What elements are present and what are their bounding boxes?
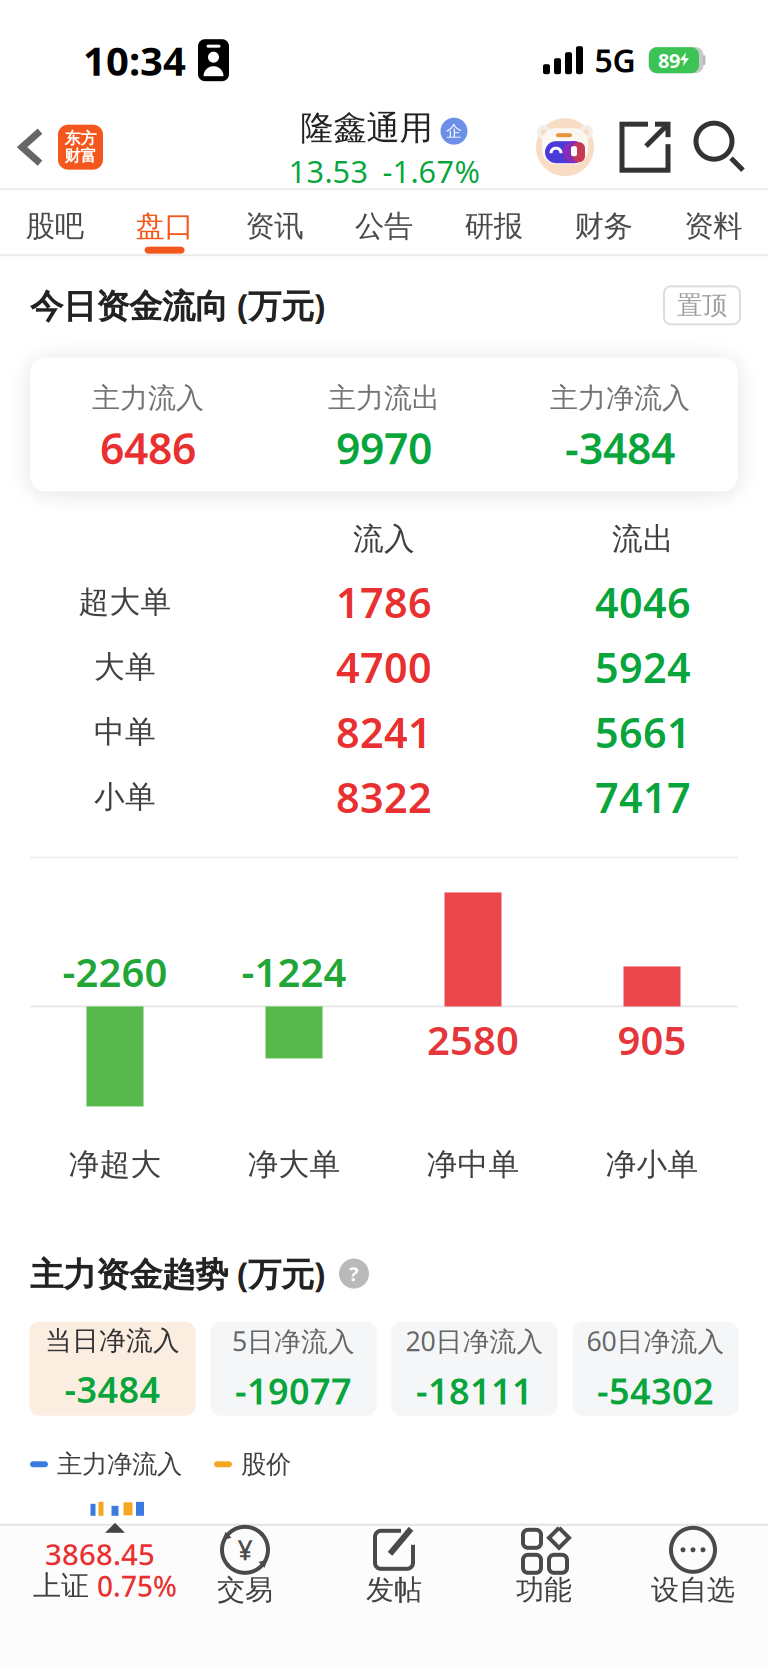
button[interactable]: 资料 (658, 190, 768, 254)
button[interactable]: 设自选 (621, 1524, 765, 1670)
staticText: 10:34 (83, 34, 186, 87)
staticText: 设自选 (651, 1573, 735, 1607)
staticText: 净超大 (68, 1146, 161, 1183)
staticText: 905 (617, 1013, 686, 1066)
staticText: 财富 (64, 146, 96, 166)
button[interactable]: 财务 (549, 190, 658, 254)
staticText: 5日净流入 (232, 1323, 355, 1358)
button[interactable]: 智能助手 (536, 118, 594, 176)
button[interactable]: 置顶 (664, 286, 740, 324)
staticText: 流入 (353, 520, 415, 558)
button[interactable]: 盘口 (110, 190, 219, 254)
staticText: 研报 (465, 208, 523, 244)
staticText: 公告 (355, 208, 413, 244)
staticText: 东方 (64, 128, 96, 148)
staticText: 5924 (595, 639, 691, 694)
staticText: 2580 (427, 1013, 519, 1066)
staticText: -19077 (235, 1366, 352, 1414)
staticText: 资讯 (245, 208, 303, 244)
staticText: 9970 (336, 419, 432, 476)
staticText: -3484 (565, 419, 675, 476)
staticText: 流出 (612, 520, 674, 558)
staticText: 发帖 (366, 1573, 422, 1607)
button[interactable]: 东方财富 (58, 125, 103, 170)
button[interactable]: 发帖 (322, 1524, 466, 1670)
staticText: 5661 (595, 704, 691, 759)
staticText: 小单 (94, 778, 156, 816)
staticText: -2260 (62, 945, 167, 998)
staticText: 6486 (100, 419, 196, 476)
staticText: -54302 (597, 1366, 714, 1414)
staticText: 3868.45 (45, 1534, 155, 1573)
staticText: 中单 (94, 713, 156, 751)
staticText: 89 (658, 47, 680, 73)
staticText: 财务 (574, 208, 632, 244)
staticText: 上证 (33, 1569, 89, 1603)
staticText: 大单 (94, 648, 156, 686)
staticText: 隆鑫通用 (300, 108, 432, 149)
button[interactable]: 功能 (472, 1524, 616, 1670)
staticText: ? (349, 1260, 359, 1287)
button[interactable]: 60日净流入 (572, 1322, 738, 1416)
staticText: 主力资金趋势 (万元) (30, 1251, 325, 1296)
button[interactable]: 帮助 (339, 1259, 369, 1289)
staticText: 净小单 (605, 1146, 698, 1183)
button[interactable]: 5日净流入 (210, 1322, 376, 1416)
staticText: 净中单 (426, 1146, 519, 1183)
button[interactable]: 上证指数 (0, 1524, 170, 1670)
staticText: 8322 (336, 769, 432, 824)
staticText: 5G (594, 39, 635, 81)
staticText: 资料 (684, 208, 742, 244)
staticText: 1786 (336, 574, 432, 629)
button[interactable]: 当日净流入 (29, 1322, 195, 1416)
button[interactable]: 分享 (618, 120, 672, 174)
staticText: 股吧 (26, 208, 84, 244)
staticText: 功能 (516, 1573, 572, 1607)
staticText: 主力流入 (92, 381, 204, 415)
staticText: 企 (446, 121, 462, 141)
staticText: 主力净流入 (550, 381, 690, 415)
staticText: 4046 (595, 574, 691, 629)
staticText: 今日资金流向 (万元) (30, 283, 325, 327)
staticText: -1224 (241, 945, 346, 998)
button[interactable]: 资讯 (219, 190, 329, 254)
staticText: 8241 (336, 704, 432, 759)
staticText: 主力流出 (328, 381, 440, 415)
staticText: 4700 (336, 639, 432, 694)
button[interactable]: 研报 (439, 190, 549, 254)
button[interactable]: 20日净流入 (391, 1322, 557, 1416)
staticText: 盘口 (136, 208, 194, 244)
staticText: 13.53 (288, 151, 368, 191)
staticText: 净大单 (247, 1146, 340, 1183)
button[interactable]: 交易 (173, 1524, 317, 1670)
staticText: 超大单 (78, 583, 171, 621)
staticText: -18111 (416, 1366, 533, 1414)
staticText: 0.75% (97, 1567, 177, 1604)
staticText: 7417 (595, 769, 691, 824)
staticText: 当日净流入 (45, 1324, 180, 1357)
button[interactable]: 搜索 (694, 121, 746, 173)
button[interactable]: 股吧 (0, 190, 110, 254)
staticText: ¥ (237, 1532, 252, 1567)
staticText: 交易 (217, 1573, 273, 1607)
button[interactable]: 返回 (0, 128, 58, 166)
staticText: 主力净流入 (57, 1449, 182, 1480)
staticText: -1.67% (382, 151, 479, 191)
staticText: 股价 (241, 1449, 291, 1480)
staticText: 置顶 (677, 290, 727, 321)
staticText: 60日净流入 (586, 1323, 724, 1358)
staticText: 20日净流入 (405, 1323, 543, 1358)
button[interactable]: 公告 (329, 190, 439, 254)
staticText: -3484 (64, 1365, 160, 1413)
